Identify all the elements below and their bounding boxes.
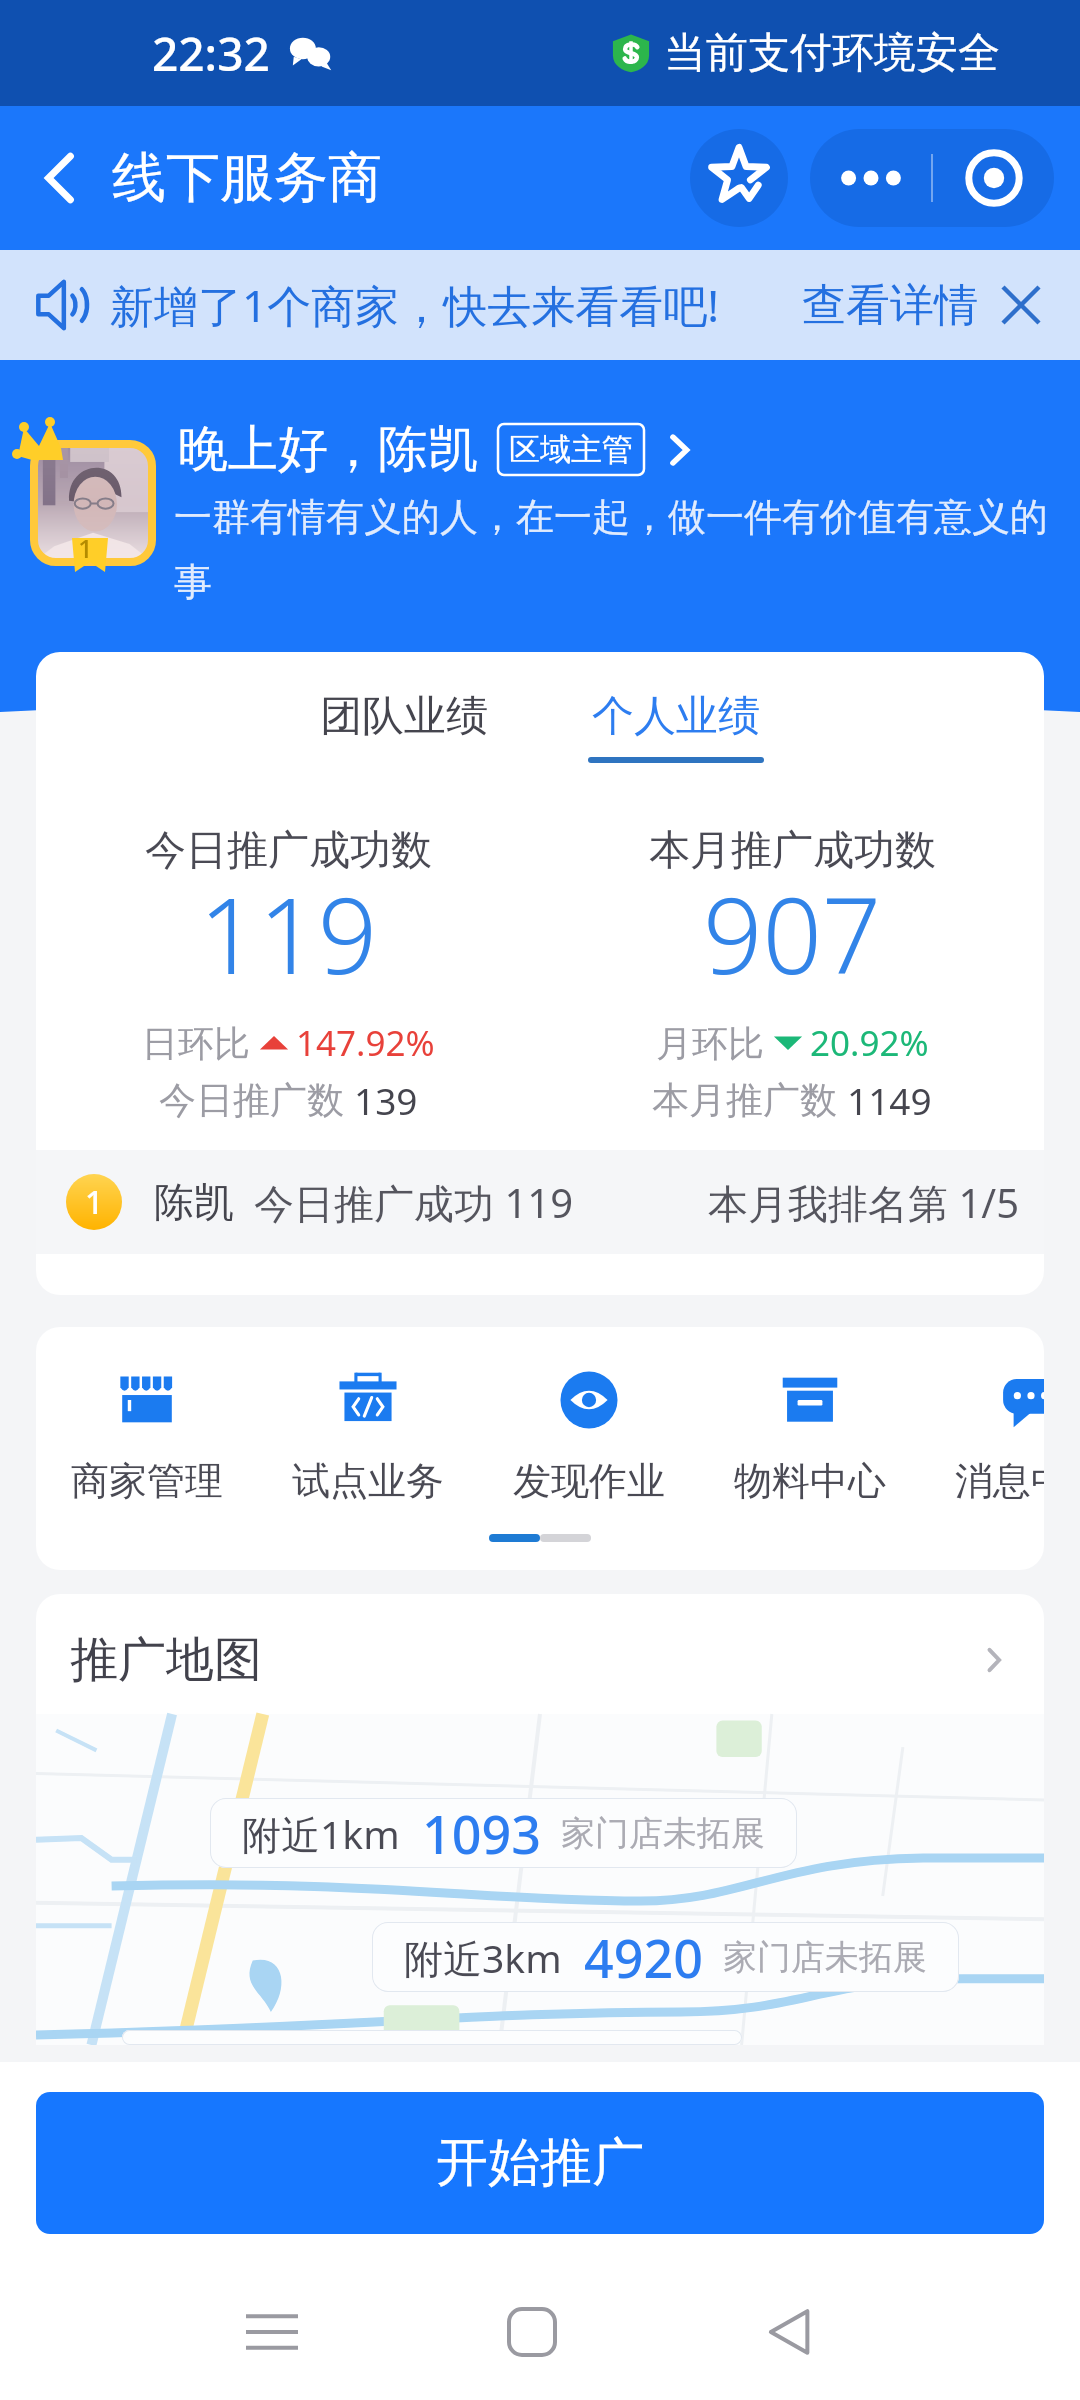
button[interactable]: 推广地图 bbox=[36, 1594, 1044, 1714]
staticText: 消息中心 bbox=[955, 1457, 1044, 1505]
button[interactable]: 试点业务 bbox=[257, 1369, 478, 1505]
button[interactable]: Favorite bbox=[690, 129, 788, 227]
staticText: 个人业绩 bbox=[592, 690, 760, 743]
button[interactable]: Dismiss notice bbox=[992, 276, 1050, 334]
button[interactable]: Recent apps bbox=[218, 2278, 326, 2386]
staticText: 家门店未拓展 bbox=[723, 1936, 927, 1979]
staticText: 区域主管 bbox=[509, 430, 633, 469]
staticText: 查看详情 bbox=[802, 278, 978, 333]
staticText: 发现作业 bbox=[513, 1457, 665, 1505]
button[interactable]: 查看详情 bbox=[802, 278, 978, 333]
staticText: 本月推广数 bbox=[652, 1077, 837, 1124]
button[interactable]: Back bbox=[22, 140, 98, 216]
button[interactable]: 附近3km bbox=[372, 1922, 959, 1992]
staticText: 当前支付环境安全 bbox=[664, 27, 1000, 80]
button[interactable]: 附近1km bbox=[210, 1798, 797, 1868]
staticText: 附近1km bbox=[242, 1807, 400, 1860]
button[interactable]: 晚上好，陈凯 bbox=[178, 418, 698, 481]
staticText: 1 bbox=[85, 1180, 104, 1224]
button[interactable]: Profile avatar bbox=[10, 372, 170, 582]
staticText: 开始推广 bbox=[436, 2130, 644, 2196]
staticText: 线下服务商 bbox=[112, 144, 382, 212]
button[interactable]: 商家管理 bbox=[36, 1369, 257, 1505]
staticText: 家门店未拓展 bbox=[561, 1812, 765, 1855]
staticText: 陈凯 bbox=[154, 1177, 234, 1227]
button[interactable]: 个人业绩 bbox=[588, 690, 764, 763]
staticText: 119 bbox=[199, 863, 378, 1005]
button[interactable]: 团队业绩 bbox=[316, 690, 492, 763]
staticText: 今日推广数 bbox=[159, 1077, 344, 1124]
staticText: 试点业务 bbox=[292, 1457, 444, 1505]
staticText: 今日推广成功 119 bbox=[254, 1175, 574, 1230]
staticText: 月环比 bbox=[656, 1021, 764, 1066]
button[interactable]: Close mini program bbox=[933, 129, 1054, 227]
staticText: 推广地图 bbox=[70, 1630, 262, 1690]
staticText: 附近3km bbox=[404, 1931, 562, 1984]
staticText: 一群有情有义的人，在一起，做一件有价值有意义的 事 bbox=[174, 493, 1054, 607]
staticText: 22:32 bbox=[152, 22, 270, 85]
staticText: 团队业绩 bbox=[320, 690, 488, 743]
staticText: 晚上好，陈凯 bbox=[178, 418, 478, 481]
button[interactable]: Home bbox=[478, 2278, 586, 2386]
staticText: 本月推广成功数 bbox=[649, 825, 936, 877]
staticText: 1149 bbox=[847, 1075, 932, 1125]
button[interactable]: 开始推广 bbox=[36, 2092, 1044, 2234]
staticText: 139 bbox=[354, 1075, 418, 1125]
staticText: 20.92% bbox=[810, 1019, 929, 1067]
staticText: 1 bbox=[78, 530, 93, 565]
staticText: 今日推广成功数 bbox=[145, 825, 432, 877]
button[interactable]: 发现作业 bbox=[478, 1369, 699, 1505]
staticText: 本月我排名第 1/5 bbox=[708, 1175, 1020, 1230]
button[interactable]: 消息中心 bbox=[920, 1369, 1044, 1505]
staticText: 1093 bbox=[422, 1798, 541, 1868]
button[interactable]: Back bbox=[738, 2278, 846, 2386]
staticText: 日环比 bbox=[142, 1021, 250, 1066]
button[interactable]: More options bbox=[810, 129, 931, 227]
button[interactable]: 物料中心 bbox=[699, 1369, 920, 1505]
staticText: 商家管理 bbox=[71, 1457, 223, 1505]
staticText: 新增了1个商家，快去来看看吧! bbox=[110, 275, 720, 335]
staticText: 物料中心 bbox=[734, 1457, 886, 1505]
staticText: 4920 bbox=[584, 1922, 703, 1992]
staticText: 147.92% bbox=[296, 1019, 435, 1067]
button[interactable]: 1 bbox=[36, 1150, 1044, 1254]
staticText: 907 bbox=[703, 863, 882, 1005]
